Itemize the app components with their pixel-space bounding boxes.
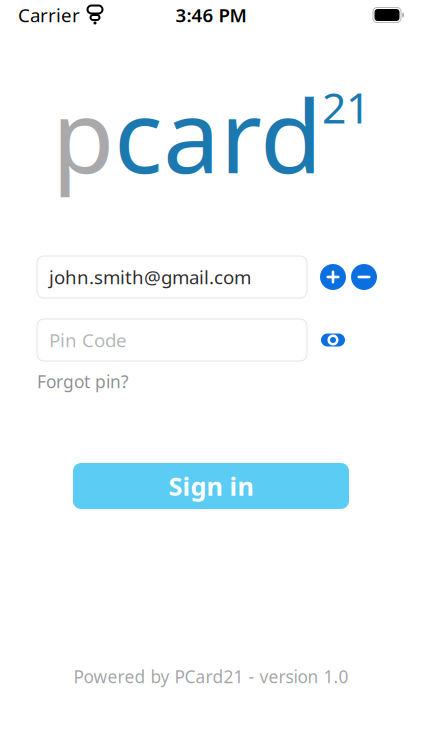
button[interactable]: Sign in [73,463,349,509]
staticText: Carrier [18,3,80,27]
staticText: john.smith@gmail.com [49,265,251,289]
staticText: Sign in [168,469,253,503]
staticText: Powered by PCard21 - version 1.0 [73,665,348,688]
staticText: Forgot pin? [37,370,129,393]
staticText: p [52,67,114,201]
button[interactable]: Forgot pin? [37,361,129,397]
button[interactable]: Remove account [351,264,377,290]
button[interactable]: Show pin code [320,327,346,353]
button[interactable]: Add account [320,264,346,290]
staticText: Pin Code [49,328,127,352]
staticText: 3:46 PM [175,3,246,27]
staticText: 21 [322,79,370,135]
staticText: card [114,67,322,201]
